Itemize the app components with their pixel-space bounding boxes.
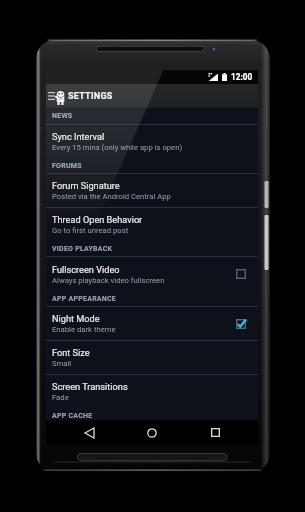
staticText: NEWS xyxy=(52,112,73,120)
button[interactable]: Forum Signature xyxy=(46,174,258,207)
staticText: Every 15 mins (only while app is open) xyxy=(52,143,183,152)
staticText: Sync Interval xyxy=(52,131,105,142)
staticText: Posted via the Android Central App xyxy=(52,192,171,201)
staticText: VIDEO PLAYBACK xyxy=(52,245,113,253)
staticText: Fullscreen Video xyxy=(52,264,120,275)
button[interactable]: Thread Open Behavior xyxy=(46,208,258,241)
staticText: Screen Transitions xyxy=(52,381,128,392)
staticText: Go to first unread post xyxy=(52,226,129,235)
staticText: SETTINGS xyxy=(68,91,113,102)
staticText: Night Mode xyxy=(52,313,100,324)
staticText: Small xyxy=(52,359,72,368)
staticText: 12:00 xyxy=(231,72,253,82)
staticText: Thread Open Behavior xyxy=(52,214,143,225)
button[interactable]: Recent apps xyxy=(195,420,235,445)
button[interactable]: Sync Interval xyxy=(46,125,258,158)
staticText: Always playback video fullscreen xyxy=(52,276,165,285)
button[interactable]: Fullscreen Video xyxy=(46,257,258,291)
staticText: APP APPEARANCE xyxy=(52,295,117,303)
button[interactable]: Night Mode xyxy=(46,307,258,340)
staticText: APP CACHE xyxy=(52,412,93,420)
button[interactable]: Back xyxy=(69,420,109,445)
button[interactable]: Screen Transitions xyxy=(46,375,258,408)
staticText: Forum Signature xyxy=(52,180,120,191)
staticText: Enable dark theme xyxy=(52,325,116,334)
button[interactable]: Font Size xyxy=(46,341,258,374)
staticText: Fade xyxy=(52,393,69,402)
button[interactable]: Home xyxy=(132,420,172,445)
staticText: FORUMS xyxy=(52,162,82,170)
button[interactable]: Open navigation drawer xyxy=(46,84,56,108)
staticText: Font Size xyxy=(52,347,90,358)
